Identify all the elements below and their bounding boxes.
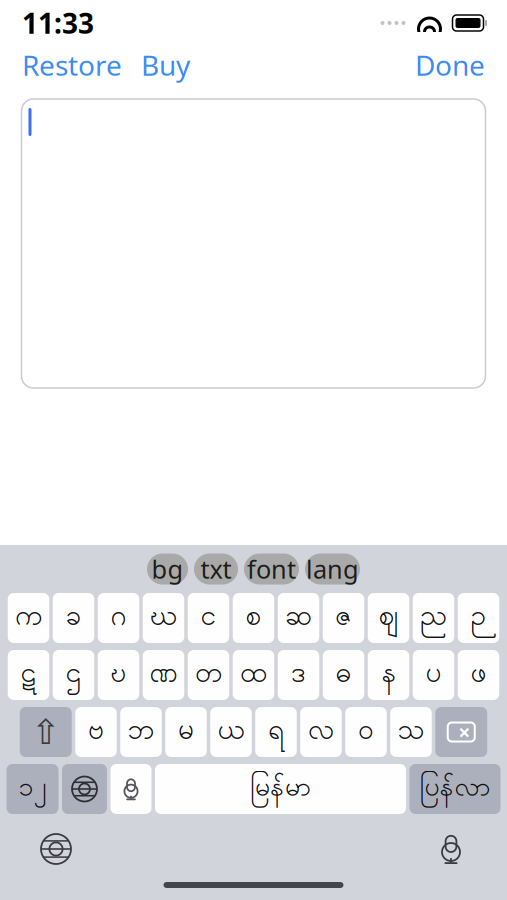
button[interactable]: ဋ xyxy=(8,650,49,700)
button[interactable]: တ xyxy=(188,650,229,700)
button[interactable]: ည xyxy=(413,593,454,643)
staticText: ဋ xyxy=(20,655,36,695)
staticText: txt xyxy=(200,552,231,586)
staticText: ပြန်လာ xyxy=(419,770,490,808)
button[interactable]: စ xyxy=(233,593,274,643)
staticText: ဃ xyxy=(150,598,177,638)
staticText: ဉ xyxy=(470,598,486,638)
staticText: စ xyxy=(245,598,261,638)
button[interactable]: ဆ xyxy=(278,593,319,643)
button[interactable]: Change keyboard xyxy=(33,826,79,872)
button[interactable]: Next keyboard xyxy=(62,764,107,814)
staticText: ဏ xyxy=(149,655,177,695)
staticText: ဂ xyxy=(110,598,126,638)
staticText: သ xyxy=(397,712,424,752)
button[interactable]: ဂ xyxy=(98,593,139,643)
staticText: ယ xyxy=(217,712,244,752)
staticText: င xyxy=(200,598,216,638)
staticText: န xyxy=(381,655,395,695)
button[interactable]: ပ xyxy=(413,650,454,700)
staticText: ည xyxy=(420,598,447,638)
button[interactable]: ဃ xyxy=(143,593,184,643)
button[interactable]: ထ xyxy=(233,650,274,700)
button[interactable]: Done xyxy=(410,41,490,89)
button[interactable]: ဎ xyxy=(98,650,139,700)
staticText: ဘ xyxy=(127,712,154,752)
button[interactable]: txt xyxy=(194,553,238,584)
staticText: ဌ xyxy=(65,655,81,695)
button[interactable]: န xyxy=(368,650,409,700)
button[interactable]: Dictation xyxy=(428,826,474,872)
button[interactable]: Buy xyxy=(136,41,195,89)
button[interactable]: Numbers xyxy=(6,764,58,814)
staticText: မ xyxy=(178,712,194,752)
staticText: တ xyxy=(195,655,222,695)
staticText: font xyxy=(247,552,296,586)
staticText: ဗ xyxy=(88,712,104,752)
staticText: ဖ xyxy=(470,655,486,695)
button[interactable]: Shift xyxy=(20,707,72,757)
button[interactable]: ဏ xyxy=(143,650,184,700)
staticText: Done xyxy=(415,46,485,84)
button[interactable]: lang xyxy=(305,553,360,584)
button[interactable]: ခ xyxy=(53,593,94,643)
staticText: ၁၂ xyxy=(18,770,46,808)
button[interactable]: ဈ xyxy=(368,593,409,643)
staticText: ပ xyxy=(425,655,441,695)
button[interactable]: font xyxy=(244,553,299,584)
staticText: Buy xyxy=(141,46,190,84)
button[interactable]: ပြန်လာ xyxy=(409,764,500,814)
staticText: × xyxy=(458,718,470,746)
staticText: bg xyxy=(151,552,183,586)
button[interactable]: bg xyxy=(147,553,188,584)
button[interactable]: ဝ xyxy=(345,707,387,757)
button[interactable]: ဒ xyxy=(278,650,319,700)
staticText: ဈ xyxy=(378,598,398,638)
button[interactable]: ဖ xyxy=(458,650,499,700)
button[interactable]: ဉ xyxy=(458,593,499,643)
button[interactable]: သ xyxy=(390,707,432,757)
staticText: ⇧ xyxy=(31,712,60,752)
staticText: ရ xyxy=(268,712,284,752)
button[interactable]: က xyxy=(8,593,49,643)
staticText: ဓ xyxy=(335,655,351,695)
button[interactable]: Dictation xyxy=(110,764,151,814)
button[interactable]: မြန်မာ xyxy=(155,764,406,814)
staticText: ဎ xyxy=(110,655,126,695)
button[interactable]: ဗ xyxy=(75,707,117,757)
button[interactable]: Restore xyxy=(17,41,127,89)
button[interactable]: ယ xyxy=(210,707,252,757)
staticText: မြန်မာ xyxy=(250,770,311,808)
button[interactable]: ဘ xyxy=(120,707,162,757)
button[interactable]: ရ xyxy=(255,707,297,757)
button[interactable]: ဌ xyxy=(53,650,94,700)
staticText: ထ xyxy=(240,655,267,695)
staticText: Restore xyxy=(22,46,122,84)
button[interactable]: ဓ xyxy=(323,650,364,700)
button[interactable]: င xyxy=(188,593,229,643)
staticText: lang xyxy=(306,552,359,586)
staticText: လ xyxy=(308,712,334,752)
button[interactable]: လ xyxy=(300,707,342,757)
button[interactable]: ဇ xyxy=(323,593,364,643)
staticText: ခ xyxy=(65,598,81,638)
staticText: ဝ xyxy=(358,712,374,752)
staticText: ဆ xyxy=(285,598,312,638)
button[interactable]: မ xyxy=(165,707,207,757)
staticText: ဇ xyxy=(335,598,352,638)
staticText: ဒ xyxy=(291,655,306,695)
button[interactable]: Delete xyxy=(435,707,487,757)
staticText: 11:33 xyxy=(22,4,94,42)
staticText: က xyxy=(15,598,42,638)
